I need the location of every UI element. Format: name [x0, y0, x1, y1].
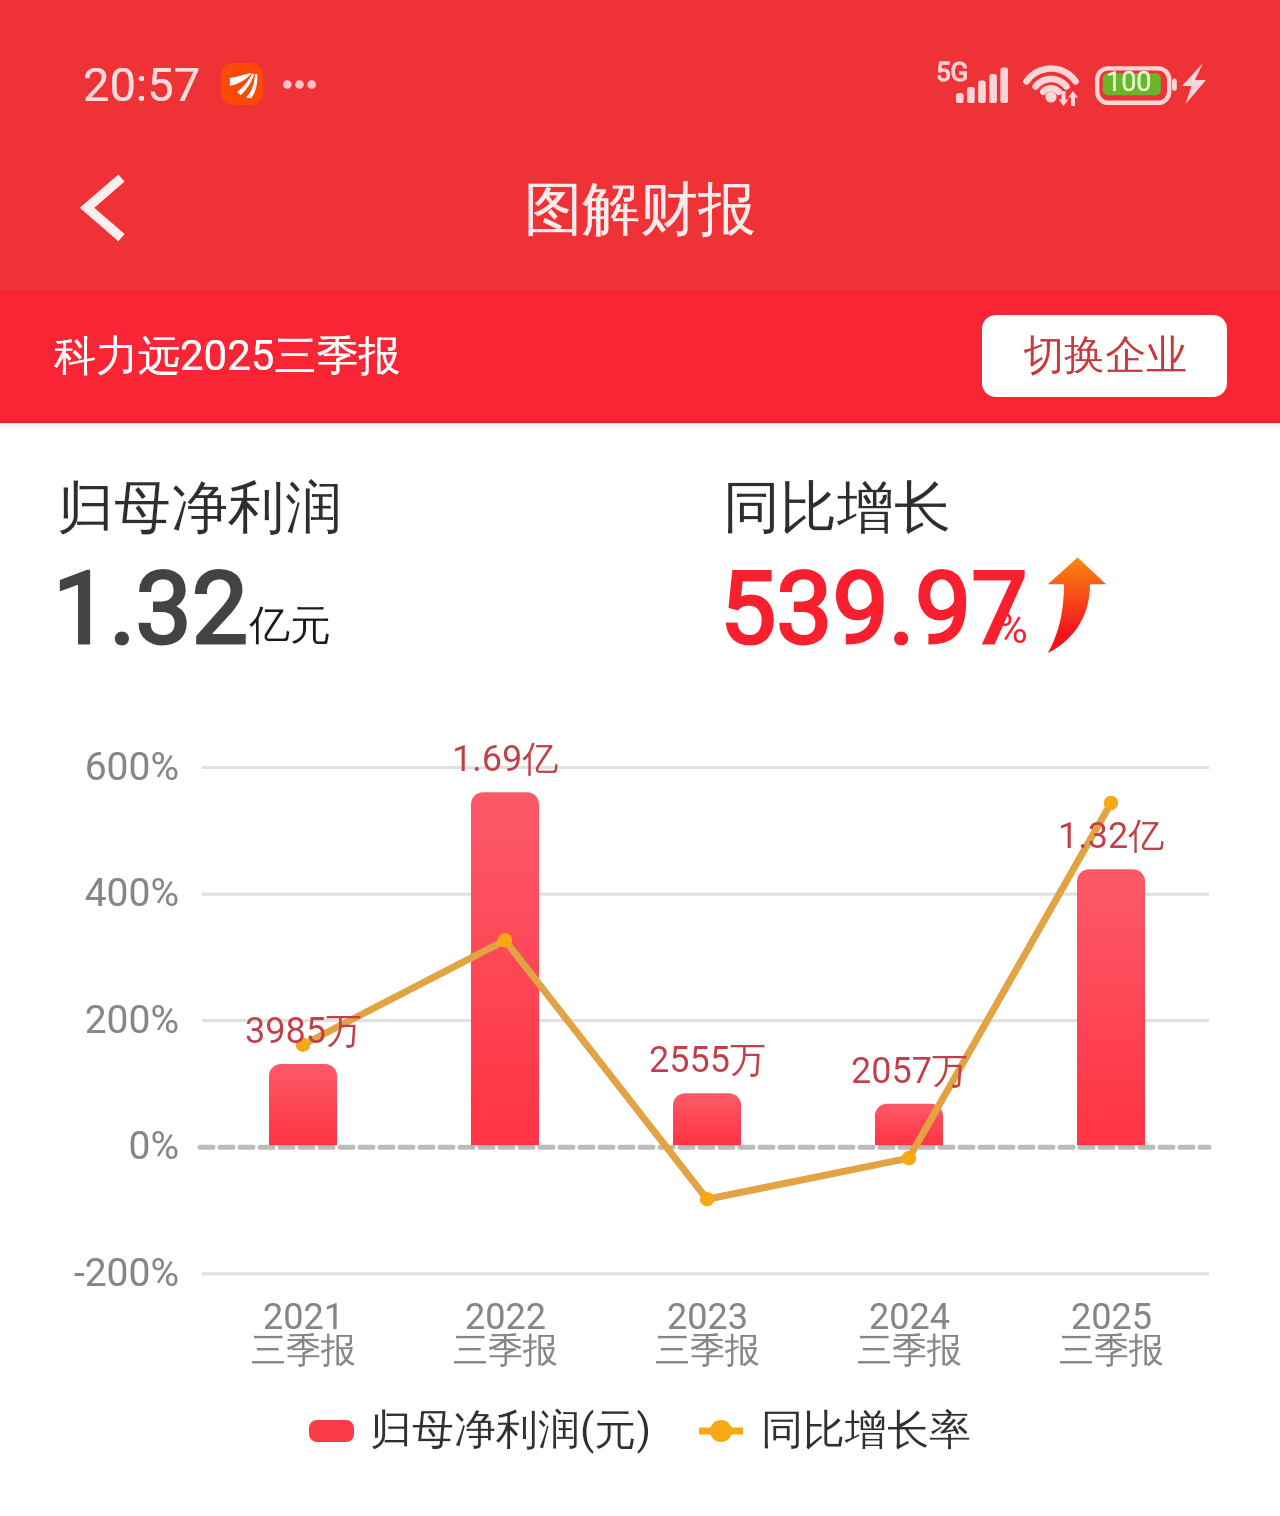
staticText: 归母净利润 [57, 472, 342, 544]
staticText: 同比增长 [723, 472, 951, 544]
staticText: 三季报 [655, 1328, 760, 1372]
staticText: 三季报 [1059, 1328, 1164, 1372]
staticText: 三季报 [453, 1328, 558, 1372]
staticText: 2024 [869, 1296, 950, 1338]
staticText: 2555万 [649, 1037, 766, 1082]
staticText: 科力远2025三季报 [54, 330, 401, 383]
staticText: % [997, 604, 1028, 653]
staticText: 20:57 [83, 57, 201, 112]
staticText: 1.32 [53, 550, 248, 667]
staticText: 切换企业 [1023, 330, 1187, 382]
staticText: 1.69亿 [452, 736, 559, 781]
staticText: 三季报 [251, 1328, 356, 1372]
button[interactable]: 同比增长率 [699, 1404, 971, 1457]
staticText: 亿元 [249, 600, 331, 652]
staticText: 600% [29, 744, 179, 790]
button[interactable]: Back [32, 155, 152, 275]
staticText: 2023 [667, 1296, 748, 1338]
staticText: -200% [29, 1250, 179, 1296]
staticText: 归母净利润(元) [370, 1404, 651, 1457]
staticText: 539.97 [720, 550, 1028, 667]
button[interactable]: 切换企业 [982, 315, 1227, 397]
staticText: 2021 [263, 1296, 344, 1338]
staticText: 200% [29, 997, 179, 1043]
staticText: 0% [29, 1123, 179, 1169]
staticText: 同比增长率 [761, 1404, 971, 1457]
staticText: 2022 [465, 1296, 546, 1338]
staticText: 3985万 [245, 1008, 362, 1053]
button[interactable]: 归母净利润(元) [309, 1404, 651, 1457]
staticText: 图解财报 [524, 173, 756, 246]
staticText: 400% [29, 870, 179, 916]
staticText: 2057万 [851, 1048, 968, 1093]
staticText: 2025 [1071, 1296, 1152, 1338]
staticText: 1.32亿 [1058, 813, 1165, 858]
staticText: 100 [1106, 66, 1152, 98]
staticText: 5G [936, 57, 969, 87]
staticText: 三季报 [857, 1328, 962, 1372]
